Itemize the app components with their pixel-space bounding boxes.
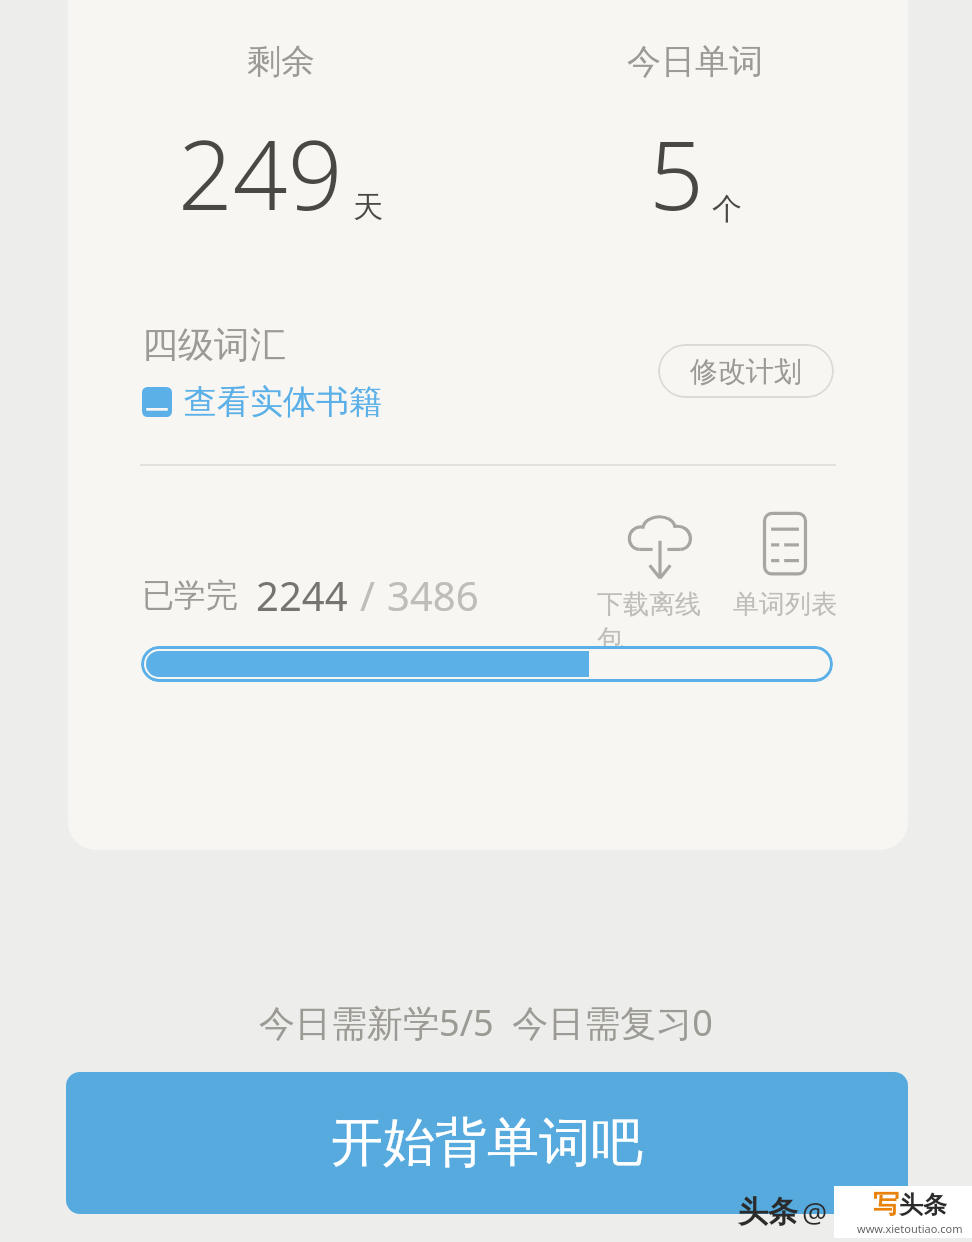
staticText: 四级词汇 <box>142 322 286 367</box>
staticText: 单词列表 <box>733 588 837 621</box>
staticText: 剩余 <box>247 40 315 83</box>
staticText: 天 <box>353 188 383 226</box>
staticText: 修改计划 <box>690 354 802 389</box>
staticText: @ <box>802 1193 828 1231</box>
staticText: 5 <box>649 107 704 238</box>
staticText: 249 <box>178 107 343 238</box>
staticText: 查看实体书籍 <box>184 381 382 423</box>
button[interactable]: 开始背单词吧 <box>66 1072 908 1214</box>
staticText: 头条 <box>899 1190 947 1220</box>
staticText: 3486 <box>387 568 479 622</box>
staticText: 头条 <box>738 1193 798 1231</box>
staticText: 2244 <box>256 568 348 622</box>
staticText: 写 <box>873 1188 899 1221</box>
staticText: 下载离线包 <box>597 588 723 656</box>
staticText: www.xietoutiao.com <box>857 1221 963 1236</box>
staticText: 已学完 <box>142 575 238 615</box>
staticText: 今日需新学5/5 今日需复习0 <box>259 998 713 1047</box>
staticText: 今日单词 <box>627 40 763 83</box>
button[interactable]: 查看实体书籍 <box>142 381 382 423</box>
button[interactable]: 下载离线包 <box>597 512 723 656</box>
staticText: 开始背单词吧 <box>331 1110 643 1176</box>
button[interactable]: 修改计划 <box>658 344 834 398</box>
button[interactable]: 今日单词 <box>505 40 885 270</box>
button[interactable]: 单词列表 <box>722 512 848 621</box>
button[interactable]: 剩余 <box>90 40 470 270</box>
staticText: 个 <box>712 190 742 228</box>
staticText: / <box>360 568 375 622</box>
